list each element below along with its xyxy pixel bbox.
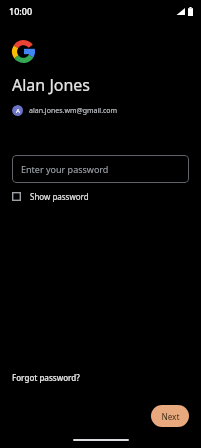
staticText: Enter your password (21, 163, 109, 175)
staticText: Forgot password? (12, 372, 80, 383)
staticText: Next (161, 411, 180, 422)
staticText: alan.jones.wm@gmail.com (29, 106, 118, 116)
staticText: Alan Jones (12, 74, 91, 96)
staticText: Show password (30, 191, 89, 202)
staticText: 10:00 (9, 5, 33, 17)
button[interactable]: A (12, 105, 118, 116)
button[interactable]: Next (151, 405, 189, 427)
button[interactable]: Forgot password? (12, 372, 80, 383)
other: Google (12, 40, 35, 63)
button[interactable]: Enter your password (12, 155, 189, 183)
staticText: A (16, 107, 20, 115)
button[interactable]: Show password (12, 189, 89, 204)
